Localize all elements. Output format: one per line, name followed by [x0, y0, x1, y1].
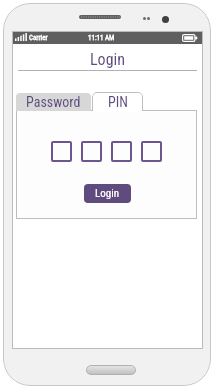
staticText: Password — [26, 94, 81, 110]
staticText: Login — [95, 187, 120, 200]
staticText: 11:11 AM — [88, 34, 115, 42]
button[interactable]: Home — [86, 365, 136, 375]
button[interactable]: PIN digit 4 — [141, 141, 162, 162]
button[interactable]: Password — [16, 93, 91, 111]
button[interactable]: Login — [84, 184, 131, 203]
button[interactable]: PIN digit 1 — [51, 141, 72, 162]
staticText: PIN — [108, 94, 128, 110]
button[interactable]: PIN digit 3 — [111, 141, 132, 162]
button[interactable]: PIN digit 2 — [81, 141, 102, 162]
staticText: Carrier — [29, 34, 48, 42]
staticText: Login — [90, 50, 125, 69]
button[interactable]: PIN — [92, 92, 143, 111]
